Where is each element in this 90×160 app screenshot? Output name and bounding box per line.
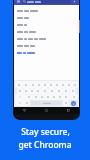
staticText: Stay secure,	[21, 126, 70, 138]
button[interactable]: Key	[63, 100, 69, 106]
button[interactable]: Key	[62, 88, 69, 94]
button[interactable]: Send	[71, 101, 76, 106]
button[interactable]: More options	[72, 0, 77, 4]
button[interactable]: Key	[57, 94, 63, 100]
button[interactable]: Key	[72, 81, 78, 88]
button[interactable]: Key	[45, 94, 51, 100]
button[interactable]: Key	[42, 81, 48, 88]
button[interactable]	[17, 21, 77, 28]
button[interactable]: Key	[36, 81, 42, 88]
button[interactable]: Key	[39, 94, 45, 100]
staticText: get Chrooma	[18, 139, 72, 151]
button[interactable]: Key	[17, 88, 23, 94]
button[interactable]: Home	[35, 107, 57, 114]
button[interactable]: Key	[24, 100, 30, 106]
button[interactable]: Key	[29, 88, 35, 94]
button[interactable]: Key	[29, 81, 36, 88]
button[interactable]: Key	[15, 81, 22, 88]
button[interactable]: Key	[54, 81, 60, 88]
button[interactable]: Symbols	[15, 100, 24, 106]
button[interactable]: Key	[51, 94, 57, 100]
button[interactable]: Key	[55, 88, 62, 94]
button[interactable]: Key	[63, 94, 69, 100]
button[interactable]	[22, 0, 71, 4]
button[interactable]	[17, 35, 77, 42]
button[interactable]	[17, 28, 77, 35]
button[interactable]: Key	[69, 88, 76, 94]
button[interactable]	[17, 50, 77, 56]
button[interactable]: Open navigation menu	[16, 0, 21, 4]
button[interactable]: Back	[14, 107, 35, 114]
button[interactable]: Space	[31, 101, 62, 105]
button[interactable]: Key	[48, 88, 55, 94]
button[interactable]	[17, 42, 77, 49]
button[interactable]: Key	[23, 88, 29, 94]
button[interactable]: Backspace	[69, 94, 78, 100]
button[interactable]: Recent apps	[57, 107, 79, 114]
button[interactable]: Key	[35, 88, 41, 94]
button[interactable]: Key	[32, 94, 39, 100]
button[interactable]: Key	[48, 81, 54, 88]
button[interactable]: Key	[25, 94, 32, 100]
button[interactable]	[17, 14, 77, 21]
button[interactable]: Key	[66, 81, 72, 88]
button[interactable]: Key	[22, 81, 29, 88]
button[interactable]: Key	[60, 81, 66, 88]
button[interactable]	[17, 7, 77, 14]
button[interactable]: Shift	[15, 94, 25, 100]
button[interactable]: Key	[41, 88, 48, 94]
